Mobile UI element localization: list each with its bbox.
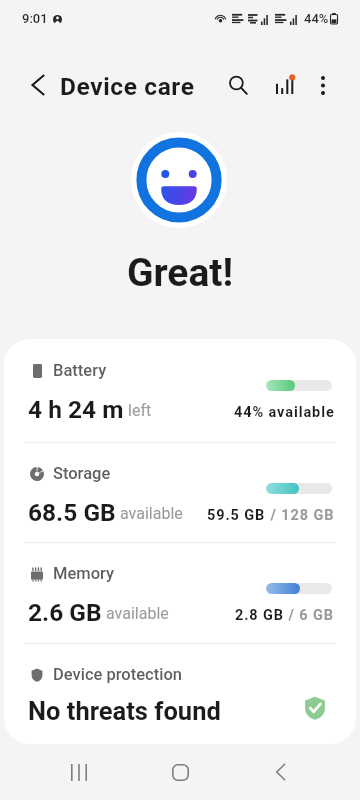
button[interactable]: Home <box>156 748 204 796</box>
staticText: / 6 GB <box>284 607 335 624</box>
staticText: 2.6 GB <box>28 598 102 627</box>
button[interactable]: Back <box>257 748 305 796</box>
button[interactable]: Device protection <box>4 643 356 744</box>
staticText: 44% <box>304 11 329 26</box>
staticText: 4 h 24 m <box>28 395 124 424</box>
staticText: 59.5 GB <box>207 507 266 524</box>
button[interactable]: Memory <box>4 542 356 643</box>
staticText: 68.5 GB <box>28 498 116 527</box>
button[interactable]: Battery <box>4 339 356 440</box>
button[interactable]: Recent apps <box>55 748 103 796</box>
staticText: Great! <box>0 250 360 296</box>
staticText: left <box>128 401 152 420</box>
staticText: Memory <box>53 564 115 583</box>
button[interactable]: More options <box>303 65 343 105</box>
staticText: / 128 GB <box>266 507 335 524</box>
staticText: 2.8 GB <box>235 607 284 624</box>
button[interactable]: Navigate up <box>18 65 58 105</box>
button[interactable]: Storage <box>4 442 356 543</box>
staticText: Battery <box>53 361 107 380</box>
staticText: available <box>106 604 169 623</box>
staticText: Storage <box>53 464 111 483</box>
staticText: 44% available <box>234 404 335 421</box>
button[interactable]: Search <box>218 65 258 105</box>
staticText: Device protection <box>53 665 183 684</box>
staticText: No threats found <box>28 696 221 726</box>
staticText: available <box>120 504 183 523</box>
staticText: Device care <box>60 72 195 101</box>
button[interactable]: Usage statistics <box>265 65 305 105</box>
staticText: 9:01 <box>22 11 48 26</box>
